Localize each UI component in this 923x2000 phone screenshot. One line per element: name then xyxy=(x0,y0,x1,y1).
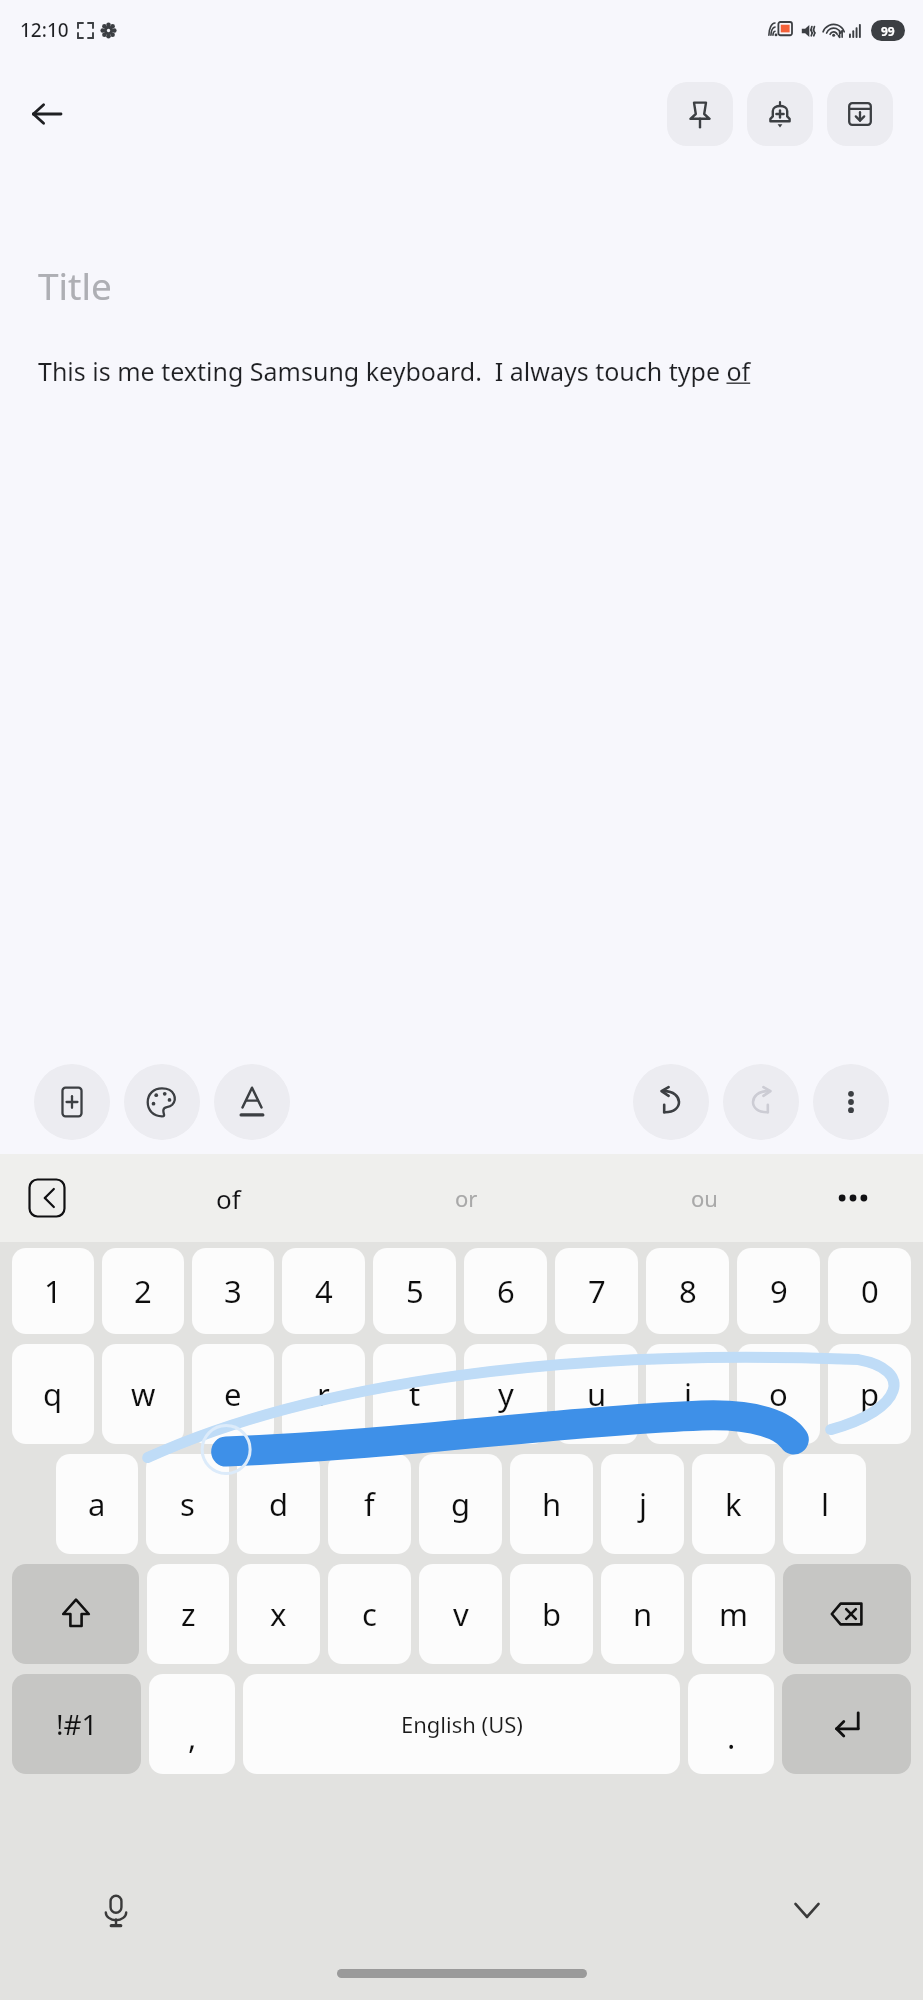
staticText: w xyxy=(131,1373,156,1415)
staticText: 6 xyxy=(497,1270,515,1312)
button[interactable]: 0 xyxy=(828,1248,911,1334)
button[interactable]: Add reminder xyxy=(747,82,813,146)
staticText: 5 xyxy=(406,1270,424,1312)
button[interactable]: 8 xyxy=(646,1248,729,1334)
button[interactable]: n xyxy=(601,1564,684,1664)
staticText: This is me texting Samsung keyboard. I a… xyxy=(38,354,751,388)
button[interactable]: 6 xyxy=(464,1248,547,1334)
staticText: o xyxy=(769,1373,788,1415)
staticText: q xyxy=(43,1373,63,1415)
button[interactable]: y xyxy=(464,1344,547,1444)
staticText: 12:10 xyxy=(20,17,69,43)
button[interactable]: ou xyxy=(585,1183,823,1213)
staticText: !#1 xyxy=(56,1705,98,1743)
staticText: m xyxy=(719,1593,748,1635)
staticText: t xyxy=(409,1373,421,1415)
button[interactable]: i xyxy=(646,1344,729,1444)
button[interactable]: Shift xyxy=(12,1564,139,1664)
staticText: k xyxy=(725,1483,742,1525)
button[interactable]: g xyxy=(419,1454,502,1554)
staticText: i xyxy=(684,1373,692,1415)
button[interactable]: b xyxy=(510,1564,593,1664)
button[interactable]: Text format xyxy=(214,1064,290,1140)
button[interactable]: u xyxy=(555,1344,638,1444)
staticText: s xyxy=(180,1483,195,1525)
button[interactable]: or xyxy=(347,1183,585,1213)
button[interactable]: e xyxy=(192,1344,274,1444)
staticText: g xyxy=(451,1483,471,1525)
button[interactable]: Add content xyxy=(34,1064,110,1140)
staticText: y xyxy=(498,1373,514,1415)
button[interactable]: Backspace xyxy=(783,1564,911,1664)
button[interactable]: s xyxy=(146,1454,229,1554)
button[interactable]: , xyxy=(149,1674,235,1774)
button[interactable]: !#1 xyxy=(12,1674,141,1774)
staticText: p xyxy=(860,1373,880,1415)
staticText: v xyxy=(453,1593,469,1635)
button[interactable]: Undo xyxy=(633,1064,709,1140)
button[interactable]: d xyxy=(237,1454,320,1554)
staticText: 1 xyxy=(44,1270,62,1312)
button[interactable]: 5 xyxy=(373,1248,456,1334)
staticText: , xyxy=(188,1716,197,1758)
staticText: l xyxy=(821,1483,829,1525)
button[interactable]: Hide keyboard xyxy=(779,1882,835,1938)
button[interactable]: 2 xyxy=(102,1248,184,1334)
button[interactable]: 3 xyxy=(192,1248,274,1334)
button[interactable]: q xyxy=(12,1344,94,1444)
button[interactable]: 1 xyxy=(12,1248,94,1334)
staticText: n xyxy=(633,1593,653,1635)
staticText: u xyxy=(587,1373,607,1415)
button[interactable]: p xyxy=(828,1344,911,1444)
button[interactable]: f xyxy=(328,1454,411,1554)
staticText: 8 xyxy=(679,1270,697,1312)
staticText: Title xyxy=(38,260,112,310)
button[interactable]: 4 xyxy=(282,1248,365,1334)
button[interactable]: m xyxy=(692,1564,775,1664)
button[interactable]: Redo xyxy=(723,1064,799,1140)
staticText: r xyxy=(317,1373,330,1415)
button[interactable]: English (US) xyxy=(243,1674,680,1774)
button[interactable]: Background colour xyxy=(124,1064,200,1140)
button[interactable]: l xyxy=(783,1454,866,1554)
staticText: 4 xyxy=(315,1270,333,1312)
staticText: . xyxy=(727,1716,736,1758)
staticText: b xyxy=(542,1593,562,1635)
button[interactable]: Title xyxy=(38,260,885,310)
button[interactable]: More options xyxy=(813,1064,889,1140)
button[interactable]: Previous suggestions xyxy=(24,1177,70,1219)
button[interactable]: o xyxy=(737,1344,820,1444)
button[interactable]: h xyxy=(510,1454,593,1554)
button[interactable]: This is me texting Samsung keyboard. I a… xyxy=(38,354,885,388)
staticText: e xyxy=(224,1373,242,1415)
button[interactable]: c xyxy=(328,1564,411,1664)
button[interactable]: Back xyxy=(14,82,78,146)
staticText: c xyxy=(362,1593,377,1635)
button[interactable]: 9 xyxy=(737,1248,820,1334)
button[interactable]: z xyxy=(147,1564,229,1664)
button[interactable]: Voice input xyxy=(88,1882,144,1938)
staticText: a xyxy=(88,1483,106,1525)
staticText: 0 xyxy=(861,1270,879,1312)
button[interactable]: w xyxy=(102,1344,184,1444)
button[interactable]: Pin xyxy=(667,82,733,146)
button[interactable]: j xyxy=(601,1454,684,1554)
button[interactable]: Enter xyxy=(782,1674,911,1774)
button[interactable]: More suggestions xyxy=(823,1154,883,1242)
staticText: English (US) xyxy=(401,1709,523,1739)
button[interactable]: 7 xyxy=(555,1248,638,1334)
button[interactable]: v xyxy=(419,1564,502,1664)
staticText: h xyxy=(542,1483,562,1525)
button[interactable]: k xyxy=(692,1454,775,1554)
button[interactable]: Archive xyxy=(827,82,893,146)
button[interactable]: t xyxy=(373,1344,456,1444)
button[interactable]: a xyxy=(56,1454,138,1554)
button[interactable]: . xyxy=(688,1674,774,1774)
button[interactable]: of xyxy=(110,1181,347,1216)
staticText: of xyxy=(216,1181,241,1216)
button[interactable]: x xyxy=(237,1564,320,1664)
staticText: or xyxy=(455,1183,478,1213)
staticText: f xyxy=(364,1483,375,1525)
staticText: j xyxy=(639,1483,647,1525)
button[interactable]: r xyxy=(282,1344,365,1444)
